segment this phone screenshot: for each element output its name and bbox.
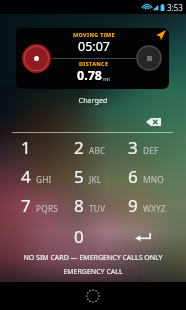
- staticText: 8: [74, 194, 84, 217]
- staticText: PQRS: [36, 203, 59, 214]
- staticText: JKL: [89, 174, 102, 185]
- button[interactable]: Stop: [136, 45, 162, 71]
- staticText: 4: [21, 165, 31, 188]
- staticText: GHI: [36, 174, 52, 185]
- staticText: MNO: [143, 174, 164, 185]
- staticText: NO SIM CARD — EMERGENCY CALLS ONLY: [0, 253, 186, 263]
- staticText: MOVING TIME: [73, 31, 115, 38]
- staticText: TUV: [89, 203, 106, 214]
- button[interactable]: 3: [119, 133, 173, 162]
- button[interactable]: Enter: [119, 220, 173, 249]
- staticText: WXYZ: [143, 203, 166, 214]
- staticText: 3: [128, 136, 138, 159]
- staticText: ABC: [89, 145, 106, 156]
- staticText: 0: [74, 225, 84, 248]
- staticText: 6: [128, 165, 138, 188]
- button[interactable]: EMERGENCY CALL: [0, 267, 186, 277]
- staticText: Charged: [0, 95, 186, 105]
- button[interactable]: 2: [65, 133, 119, 162]
- staticText: DISTANCE: [79, 60, 109, 67]
- staticText: 5: [74, 165, 84, 188]
- button[interactable]: Backspace: [141, 117, 165, 127]
- button[interactable]: 8: [65, 191, 119, 220]
- staticText: DEF: [143, 145, 159, 156]
- button[interactable]: 4: [12, 162, 65, 191]
- other: GPS: [155, 30, 166, 41]
- button[interactable]: 1: [12, 133, 65, 162]
- staticText: 7: [21, 194, 31, 217]
- staticText: mi: [103, 75, 111, 82]
- button[interactable]: 0: [65, 220, 119, 249]
- button[interactable]: 5: [65, 162, 119, 191]
- staticText: 0.78: [77, 67, 102, 84]
- staticText: 2: [74, 136, 84, 159]
- button[interactable]: Record: [22, 44, 51, 73]
- staticText: 3:53: [167, 2, 183, 13]
- staticText: 1: [21, 136, 31, 159]
- staticText: 05:07: [78, 38, 110, 55]
- staticText: 9: [128, 194, 138, 217]
- button[interactable]: 7: [12, 191, 65, 220]
- button[interactable]: 9: [119, 191, 173, 220]
- button[interactable]: 6: [119, 162, 173, 191]
